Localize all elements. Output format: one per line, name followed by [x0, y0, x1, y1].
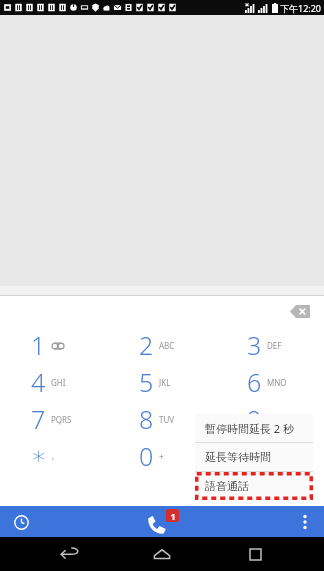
- button[interactable]: More options: [292, 509, 318, 535]
- button[interactable]: Home: [139, 539, 185, 569]
- button[interactable]: 9: [216, 400, 324, 437]
- staticText: +: [159, 451, 164, 462]
- button[interactable]: Dialpad: [141, 507, 183, 537]
- staticText: 下午12:20: [280, 2, 322, 14]
- staticText: ,: [52, 450, 55, 461]
- button[interactable]: Recents: [232, 539, 278, 569]
- button[interactable]: Back: [47, 539, 93, 569]
- staticText: 1: [31, 328, 46, 362]
- staticText: JKL: [159, 377, 171, 388]
- staticText: TUV: [159, 414, 175, 425]
- staticText: ABC: [159, 340, 175, 351]
- button[interactable]: Backspace: [286, 301, 314, 321]
- button[interactable]: 4: [0, 363, 108, 400]
- staticText: 4: [31, 365, 46, 399]
- button[interactable]: 0: [108, 437, 216, 474]
- button[interactable]: 6: [216, 363, 324, 400]
- staticText: 3: [247, 328, 262, 362]
- staticText: GHI: [51, 377, 66, 388]
- staticText: WXYZ: [267, 414, 289, 425]
- button[interactable]: Recent calls: [8, 509, 34, 535]
- button[interactable]: 5: [108, 363, 216, 400]
- staticText: 8: [139, 402, 154, 436]
- staticText: 0: [139, 439, 154, 473]
- button[interactable]: 暫停時間延長 2 秒: [195, 414, 313, 442]
- staticText: #: [246, 439, 263, 473]
- button[interactable]: #: [216, 437, 324, 474]
- staticText: 7: [31, 402, 46, 436]
- staticText: PQRS: [51, 414, 72, 425]
- staticText: 6: [247, 365, 262, 399]
- button[interactable]: ∗: [0, 437, 108, 474]
- button[interactable]: 1: [0, 326, 108, 363]
- staticText: 暫停時間延長 2 秒: [205, 421, 295, 436]
- staticText: 語音通話: [205, 479, 249, 493]
- button[interactable]: 2: [108, 326, 216, 363]
- staticText: MNO: [267, 377, 287, 388]
- staticText: 2: [139, 328, 154, 362]
- staticText: 延長等待時間: [205, 450, 271, 464]
- button[interactable]: 3: [216, 326, 324, 363]
- button[interactable]: 延長等待時間: [195, 443, 313, 471]
- staticText: DEF: [267, 340, 282, 351]
- button[interactable]: 8: [108, 400, 216, 437]
- staticText: ∗: [31, 441, 47, 470]
- button[interactable]: 7: [0, 400, 108, 437]
- staticText: 9: [247, 402, 262, 436]
- button[interactable]: 語音通話: [195, 472, 313, 500]
- staticText: 1: [170, 510, 176, 522]
- staticText: 5: [139, 365, 154, 399]
